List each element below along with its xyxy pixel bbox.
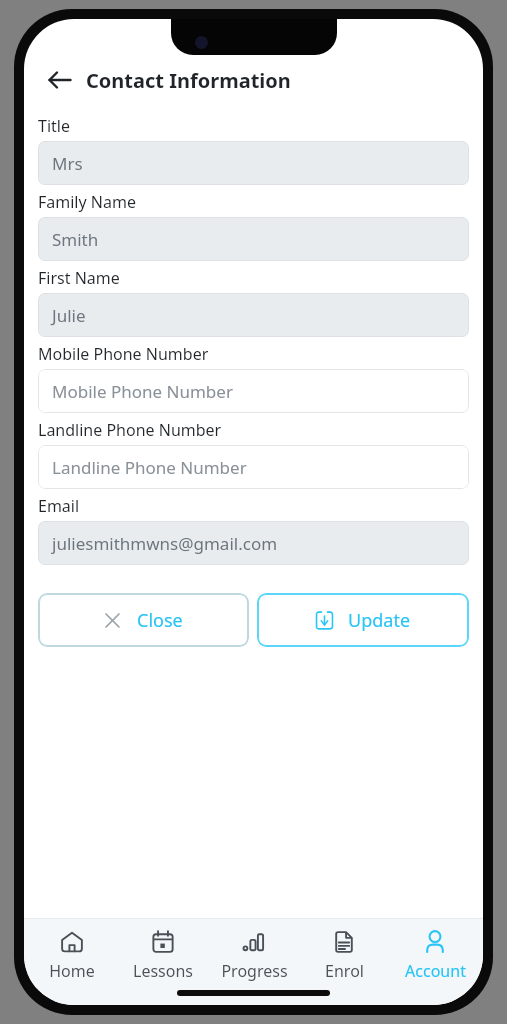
staticText: Email [38, 495, 80, 517]
button[interactable]: Julie [38, 293, 469, 337]
button[interactable]: juliesmithmwns@gmail.com [38, 521, 469, 565]
staticText: Home [49, 960, 95, 982]
button[interactable]: Close [38, 593, 249, 647]
staticText: Progress [221, 960, 288, 982]
staticText: Smith [52, 228, 99, 251]
button[interactable]: Mobile Phone Number [38, 369, 469, 413]
staticText: Enrol [325, 960, 364, 982]
staticText: Landline Phone Number [38, 419, 222, 441]
button[interactable]: Mrs [38, 141, 469, 185]
staticText: Julie [52, 304, 86, 327]
staticText: Title [38, 115, 70, 137]
button[interactable]: Update [257, 593, 469, 647]
staticText: Mobile Phone Number [52, 380, 233, 403]
button[interactable]: Home [29, 927, 115, 1005]
staticText: Family Name [38, 191, 136, 213]
staticText: juliesmithmwns@gmail.com [52, 532, 278, 555]
button[interactable]: Progress [211, 927, 297, 1005]
staticText: Contact Information [86, 67, 291, 94]
button[interactable]: Smith [38, 217, 469, 261]
staticText: Close [137, 608, 183, 633]
button[interactable]: Landline Phone Number [38, 445, 469, 489]
staticText: Mobile Phone Number [38, 343, 209, 365]
staticText: Mrs [52, 152, 83, 175]
staticText: Lessons [133, 960, 193, 982]
button[interactable]: Lessons [120, 927, 206, 1005]
button[interactable]: Account [392, 927, 478, 1005]
staticText: Landline Phone Number [52, 456, 247, 479]
staticText: Account [405, 960, 466, 982]
button[interactable]: Enrol [301, 927, 387, 1005]
staticText: First Name [38, 267, 120, 289]
staticText: Update [348, 608, 411, 633]
button[interactable]: Back [43, 63, 77, 97]
